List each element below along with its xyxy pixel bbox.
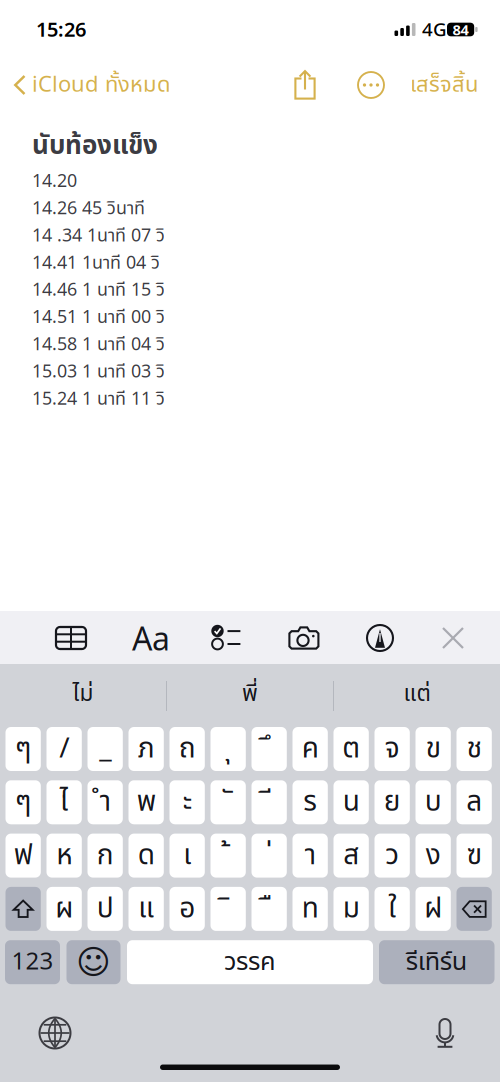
button[interactable]: Emoji bbox=[66, 940, 120, 984]
staticText: ด bbox=[138, 834, 155, 877]
staticText: ฝ bbox=[424, 888, 442, 930]
button[interactable]: Next keyboard bbox=[39, 1017, 70, 1048]
button[interactable]: ใ bbox=[374, 887, 410, 931]
button[interactable]: 123 bbox=[5, 940, 60, 984]
button[interactable]: ป bbox=[87, 887, 123, 931]
staticText: ถ bbox=[179, 728, 196, 770]
button[interactable]: น bbox=[333, 780, 369, 824]
button[interactable]: ึ bbox=[251, 727, 287, 771]
button[interactable]: ต bbox=[333, 727, 369, 771]
button[interactable]: ่ bbox=[251, 834, 287, 878]
staticText: ☺ bbox=[76, 943, 111, 981]
button[interactable]: อ bbox=[169, 887, 205, 931]
button[interactable]: _ bbox=[87, 727, 123, 771]
button[interactable]: ช bbox=[456, 727, 492, 771]
button[interactable]: ท bbox=[292, 887, 328, 931]
button[interactable]: แ bbox=[128, 887, 164, 931]
button[interactable]: Share bbox=[294, 69, 316, 101]
staticText: ุ bbox=[225, 728, 232, 770]
staticText: น bbox=[343, 781, 360, 823]
button[interactable]: Close bbox=[442, 627, 464, 649]
button[interactable]: ห bbox=[46, 834, 82, 878]
button[interactable]: ิ bbox=[210, 887, 246, 931]
button[interactable]: ล bbox=[456, 780, 492, 824]
staticText: ั bbox=[225, 781, 232, 823]
button[interactable]: รีเทิร์น bbox=[379, 940, 494, 984]
button[interactable]: ั bbox=[210, 780, 246, 824]
staticText: จ bbox=[385, 728, 400, 770]
staticText: Aa bbox=[132, 617, 170, 659]
button[interactable]: เ bbox=[169, 834, 205, 878]
staticText: / bbox=[59, 728, 69, 770]
button[interactable]: ฃ bbox=[456, 834, 492, 878]
staticText: แต่ bbox=[403, 677, 430, 711]
button[interactable]: ้ bbox=[210, 834, 246, 878]
button[interactable]: ไม่ bbox=[0, 672, 166, 716]
button[interactable]: ม bbox=[333, 887, 369, 931]
button[interactable]: ย bbox=[374, 780, 410, 824]
staticText: ฃ bbox=[467, 834, 482, 877]
button[interactable]: ก bbox=[87, 834, 123, 878]
button[interactable]: ะ bbox=[169, 780, 205, 824]
button[interactable]: ง bbox=[415, 834, 451, 878]
button[interactable]: iCloud ทั้งหมด bbox=[14, 65, 214, 105]
button[interactable]: Shift bbox=[5, 887, 41, 931]
button[interactable]: Delete bbox=[456, 887, 492, 931]
button[interactable]: แต่ bbox=[334, 672, 500, 716]
staticText: ส bbox=[343, 834, 359, 877]
button[interactable]: ุ bbox=[210, 727, 246, 771]
button[interactable]: บ bbox=[415, 780, 451, 824]
staticText: ข bbox=[426, 728, 441, 770]
staticText: ป bbox=[97, 888, 114, 930]
staticText: ม bbox=[343, 888, 360, 930]
button[interactable]: า bbox=[292, 834, 328, 878]
staticText: 14.41 1นาที 04 วิ bbox=[32, 250, 160, 277]
button[interactable]: / bbox=[46, 727, 82, 771]
button[interactable]: Dictate bbox=[434, 1018, 456, 1048]
staticText: ว bbox=[385, 834, 399, 877]
button[interactable]: ส bbox=[333, 834, 369, 878]
staticText: 14.26 45 วินาที bbox=[32, 195, 145, 222]
staticText: ง bbox=[426, 834, 441, 877]
button[interactable]: ถ bbox=[169, 727, 205, 771]
button[interactable]: ข bbox=[415, 727, 451, 771]
staticText: 14 .34 1นาที 07 วิ bbox=[32, 222, 165, 249]
staticText: ไม่ bbox=[72, 677, 93, 711]
button[interactable]: Camera bbox=[288, 626, 320, 650]
button[interactable]: More bbox=[358, 72, 384, 98]
button[interactable]: ฝ bbox=[415, 887, 451, 931]
button[interactable]: ว bbox=[374, 834, 410, 878]
button[interactable]: ด bbox=[128, 834, 164, 878]
button[interactable]: ร bbox=[292, 780, 328, 824]
staticText: เสร็จสิ้น bbox=[410, 68, 478, 102]
staticText: ย bbox=[384, 781, 401, 823]
button[interactable]: พ bbox=[128, 780, 164, 824]
button[interactable]: วรรค bbox=[127, 940, 373, 984]
button[interactable]: เสร็จสิ้น bbox=[394, 65, 494, 105]
button[interactable]: ผ bbox=[46, 887, 82, 931]
button[interactable]: Table bbox=[56, 627, 86, 649]
button[interactable]: จ bbox=[374, 727, 410, 771]
staticText: ่ bbox=[266, 834, 273, 877]
staticText: วรรค bbox=[224, 943, 276, 981]
button[interactable]: ำ bbox=[87, 780, 123, 824]
staticText: ี bbox=[266, 781, 273, 823]
button[interactable]: ค bbox=[292, 727, 328, 771]
button[interactable]: ไ bbox=[46, 780, 82, 824]
button[interactable]: พี่ bbox=[167, 672, 333, 716]
button[interactable]: ฟ bbox=[5, 834, 41, 878]
button[interactable]: ี bbox=[251, 780, 287, 824]
button[interactable]: ภ bbox=[128, 727, 164, 771]
staticText: ึ bbox=[266, 728, 273, 770]
button[interactable]: ๆ bbox=[5, 780, 41, 824]
staticText: พี่ bbox=[242, 677, 258, 711]
staticText: 14.46 1 นาที 15 วิ bbox=[32, 277, 165, 304]
staticText: ิ bbox=[225, 888, 232, 930]
staticText: พ bbox=[137, 781, 156, 823]
button[interactable]: Checklist bbox=[211, 625, 241, 650]
button[interactable]: Markup bbox=[367, 625, 393, 651]
button[interactable]: ๆ bbox=[5, 727, 41, 771]
staticText: ใ bbox=[388, 888, 396, 930]
button[interactable]: Aa bbox=[132, 623, 170, 653]
button[interactable]: ื bbox=[251, 887, 287, 931]
